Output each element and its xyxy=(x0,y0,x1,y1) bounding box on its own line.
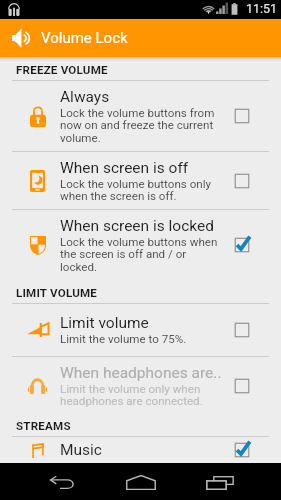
button[interactable]: When screen is locked xyxy=(0,210,281,280)
staticText: FREEZE VOLUME xyxy=(16,63,108,77)
staticText: When screen is locked xyxy=(60,217,214,235)
button[interactable]: Volume Lock xyxy=(0,19,281,57)
staticText: Lock the volume buttons from now on and … xyxy=(60,106,224,145)
staticText: Limit volume xyxy=(60,314,149,332)
staticText: Lock the volume buttons when the screen … xyxy=(60,235,224,274)
staticText: Always xyxy=(60,88,110,106)
staticText: STREAMS xyxy=(16,419,71,433)
button[interactable]: When screen is off xyxy=(0,152,281,209)
button[interactable]: Home xyxy=(101,463,180,500)
staticText: Lock the volume buttons only when the sc… xyxy=(60,177,224,203)
staticText: Music xyxy=(60,441,102,459)
staticText: When screen is off xyxy=(60,159,189,177)
staticText: Limit the volume to 75%. xyxy=(60,332,187,346)
button[interactable]: Limit volume xyxy=(0,304,281,356)
staticText: 11:51 xyxy=(246,1,278,16)
staticText: LIMIT VOLUME xyxy=(16,286,98,300)
button[interactable]: Recents xyxy=(180,463,259,500)
staticText: Volume Lock xyxy=(41,29,128,47)
staticText: Limit the volume only when headphones ar… xyxy=(60,382,224,408)
button[interactable]: When headphones are.. xyxy=(0,357,281,414)
button[interactable]: Back xyxy=(22,463,101,500)
button[interactable]: Always xyxy=(0,81,281,151)
button[interactable]: Music xyxy=(0,437,281,463)
staticText: When headphones are.. xyxy=(60,364,222,382)
